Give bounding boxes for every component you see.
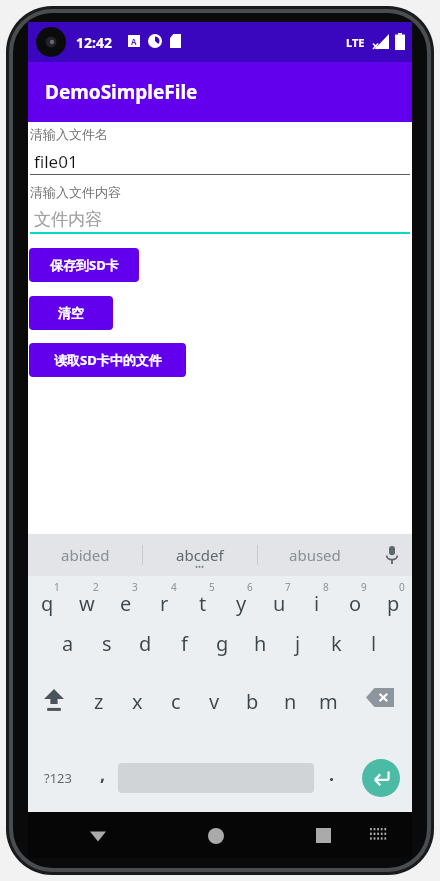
button[interactable]: Enter	[349, 759, 412, 797]
button[interactable]: Backspace	[347, 692, 412, 711]
staticText: a	[62, 630, 74, 657]
button[interactable]: m	[309, 692, 347, 719]
button[interactable]: f	[165, 634, 203, 661]
staticText: 清输入文件内容	[30, 184, 121, 200]
button[interactable]: 5	[184, 576, 222, 603]
staticText: abcdef	[176, 545, 224, 565]
button[interactable]: j	[279, 634, 317, 661]
staticText: l	[371, 630, 377, 657]
button[interactable]: Switch keyboard	[370, 828, 388, 842]
button[interactable]: s	[87, 634, 126, 661]
button[interactable]: Back	[88, 826, 108, 846]
staticText: .	[329, 762, 335, 787]
button[interactable]: x	[118, 692, 157, 719]
staticText: 8	[323, 580, 329, 594]
button[interactable]: h	[241, 634, 279, 661]
staticText: 12:42	[76, 33, 112, 52]
staticText: 3	[132, 580, 138, 594]
staticText: r	[160, 590, 169, 617]
staticText: q	[41, 590, 54, 617]
staticText: e	[120, 590, 132, 617]
staticText: u	[273, 590, 286, 617]
staticText: 文件内容	[34, 209, 102, 230]
button[interactable]: 1	[28, 576, 67, 603]
button[interactable]: 读取SD卡中的文件	[29, 343, 186, 377]
button[interactable]: g	[203, 634, 241, 661]
button[interactable]: Home	[208, 828, 224, 844]
button[interactable]: 6	[222, 576, 260, 603]
button[interactable]: v	[195, 692, 233, 719]
button[interactable]: b	[233, 692, 271, 719]
staticText: p	[387, 590, 400, 617]
button[interactable]: c	[157, 692, 195, 719]
button[interactable]: d	[126, 634, 165, 661]
staticText: 清空	[58, 305, 84, 321]
staticText: y	[236, 590, 247, 617]
staticText: c	[171, 688, 181, 715]
button[interactable]: 清空	[29, 296, 113, 330]
button[interactable]: 8	[298, 576, 336, 603]
button[interactable]: 3	[106, 576, 145, 603]
staticText: 保存到SD卡	[50, 256, 119, 274]
staticText: DemoSimpleFile	[45, 79, 198, 105]
button[interactable]: 0	[374, 576, 412, 603]
button[interactable]: k	[317, 634, 355, 661]
staticText: ?123	[44, 769, 72, 787]
button[interactable]: Shift	[28, 692, 79, 716]
staticText: LTE	[346, 35, 365, 50]
staticText: w	[79, 590, 95, 617]
staticText: i	[314, 590, 320, 617]
staticText: v	[209, 688, 220, 715]
staticText: g	[216, 630, 229, 657]
staticText: 9	[361, 580, 367, 594]
staticText: abided	[61, 545, 110, 565]
staticText: 清输入文件名	[30, 126, 108, 142]
button[interactable]: abided	[28, 545, 142, 565]
staticText: x	[132, 688, 143, 715]
button[interactable]: a	[48, 634, 87, 661]
staticText: j	[295, 630, 301, 657]
staticText: 5	[209, 580, 215, 594]
staticText: o	[349, 590, 362, 617]
button[interactable]: ,	[87, 766, 118, 791]
staticText: 0	[399, 580, 405, 594]
staticText: 读取SD卡中的文件	[54, 351, 162, 369]
staticText: A	[131, 36, 137, 47]
staticText: z	[94, 688, 104, 715]
staticText: abused	[289, 545, 341, 565]
staticText: n	[284, 688, 297, 715]
staticText: h	[254, 630, 267, 657]
staticText: k	[331, 630, 342, 657]
staticText: •••	[195, 561, 205, 572]
staticText: 6	[247, 580, 253, 594]
staticText: s	[102, 630, 112, 657]
staticText: m	[319, 688, 338, 715]
staticText: file01	[34, 150, 78, 173]
staticText: ,	[100, 762, 106, 787]
staticText: b	[246, 688, 259, 715]
button[interactable]: 4	[145, 576, 184, 603]
button[interactable]: Voice input	[372, 546, 412, 564]
staticText: d	[139, 630, 152, 657]
button[interactable]: 保存到SD卡	[29, 248, 139, 282]
staticText: f	[181, 630, 188, 657]
button[interactable]: n	[271, 692, 309, 719]
staticText: 4	[171, 580, 177, 594]
button[interactable]: ?123	[28, 769, 87, 787]
button[interactable]: z	[79, 692, 118, 719]
staticText: t	[199, 590, 207, 617]
button[interactable]: 7	[260, 576, 298, 603]
button[interactable]: 2	[67, 576, 106, 603]
button[interactable]: abused	[258, 545, 372, 565]
button[interactable]: 9	[336, 576, 374, 603]
button[interactable]: .	[314, 766, 349, 791]
staticText: 7	[285, 580, 291, 594]
staticText: 1	[54, 580, 60, 594]
button[interactable]: abcdef	[143, 545, 257, 565]
button[interactable]: l	[355, 634, 393, 661]
staticText: 2	[93, 580, 99, 594]
